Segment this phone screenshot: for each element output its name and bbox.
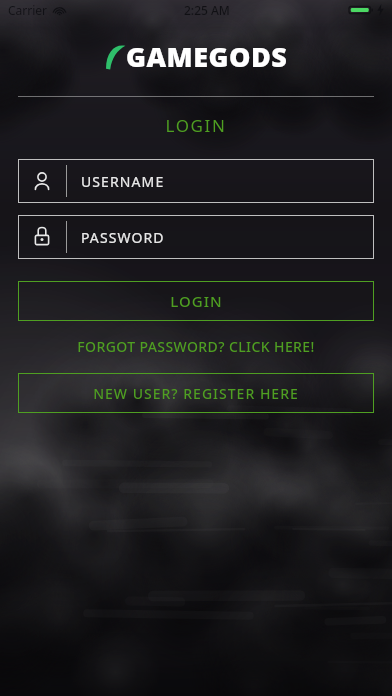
staticText: 2:25 AM (184, 2, 230, 18)
staticText: LOGIN (0, 114, 392, 137)
staticText: NEW USER? REGISTER HERE (93, 384, 299, 403)
button[interactable]: LOGIN (18, 281, 374, 321)
button[interactable]: FORGOT PASSWORD? CLICK HERE! (18, 337, 374, 356)
other: Username (32, 171, 52, 191)
button[interactable]: Password (18, 215, 374, 259)
staticText: PASSWORD (81, 228, 165, 247)
other: Password (32, 227, 52, 247)
staticText: LOGIN (170, 291, 223, 311)
button[interactable]: Username (18, 159, 374, 203)
staticText: FORGOT PASSWORD? CLICK HERE! (77, 337, 315, 356)
staticText: Carrier (8, 2, 48, 18)
button[interactable]: NEW USER? REGISTER HERE (18, 373, 374, 413)
staticText: GAMEGODS (126, 38, 288, 75)
staticText: USERNAME (81, 172, 165, 191)
